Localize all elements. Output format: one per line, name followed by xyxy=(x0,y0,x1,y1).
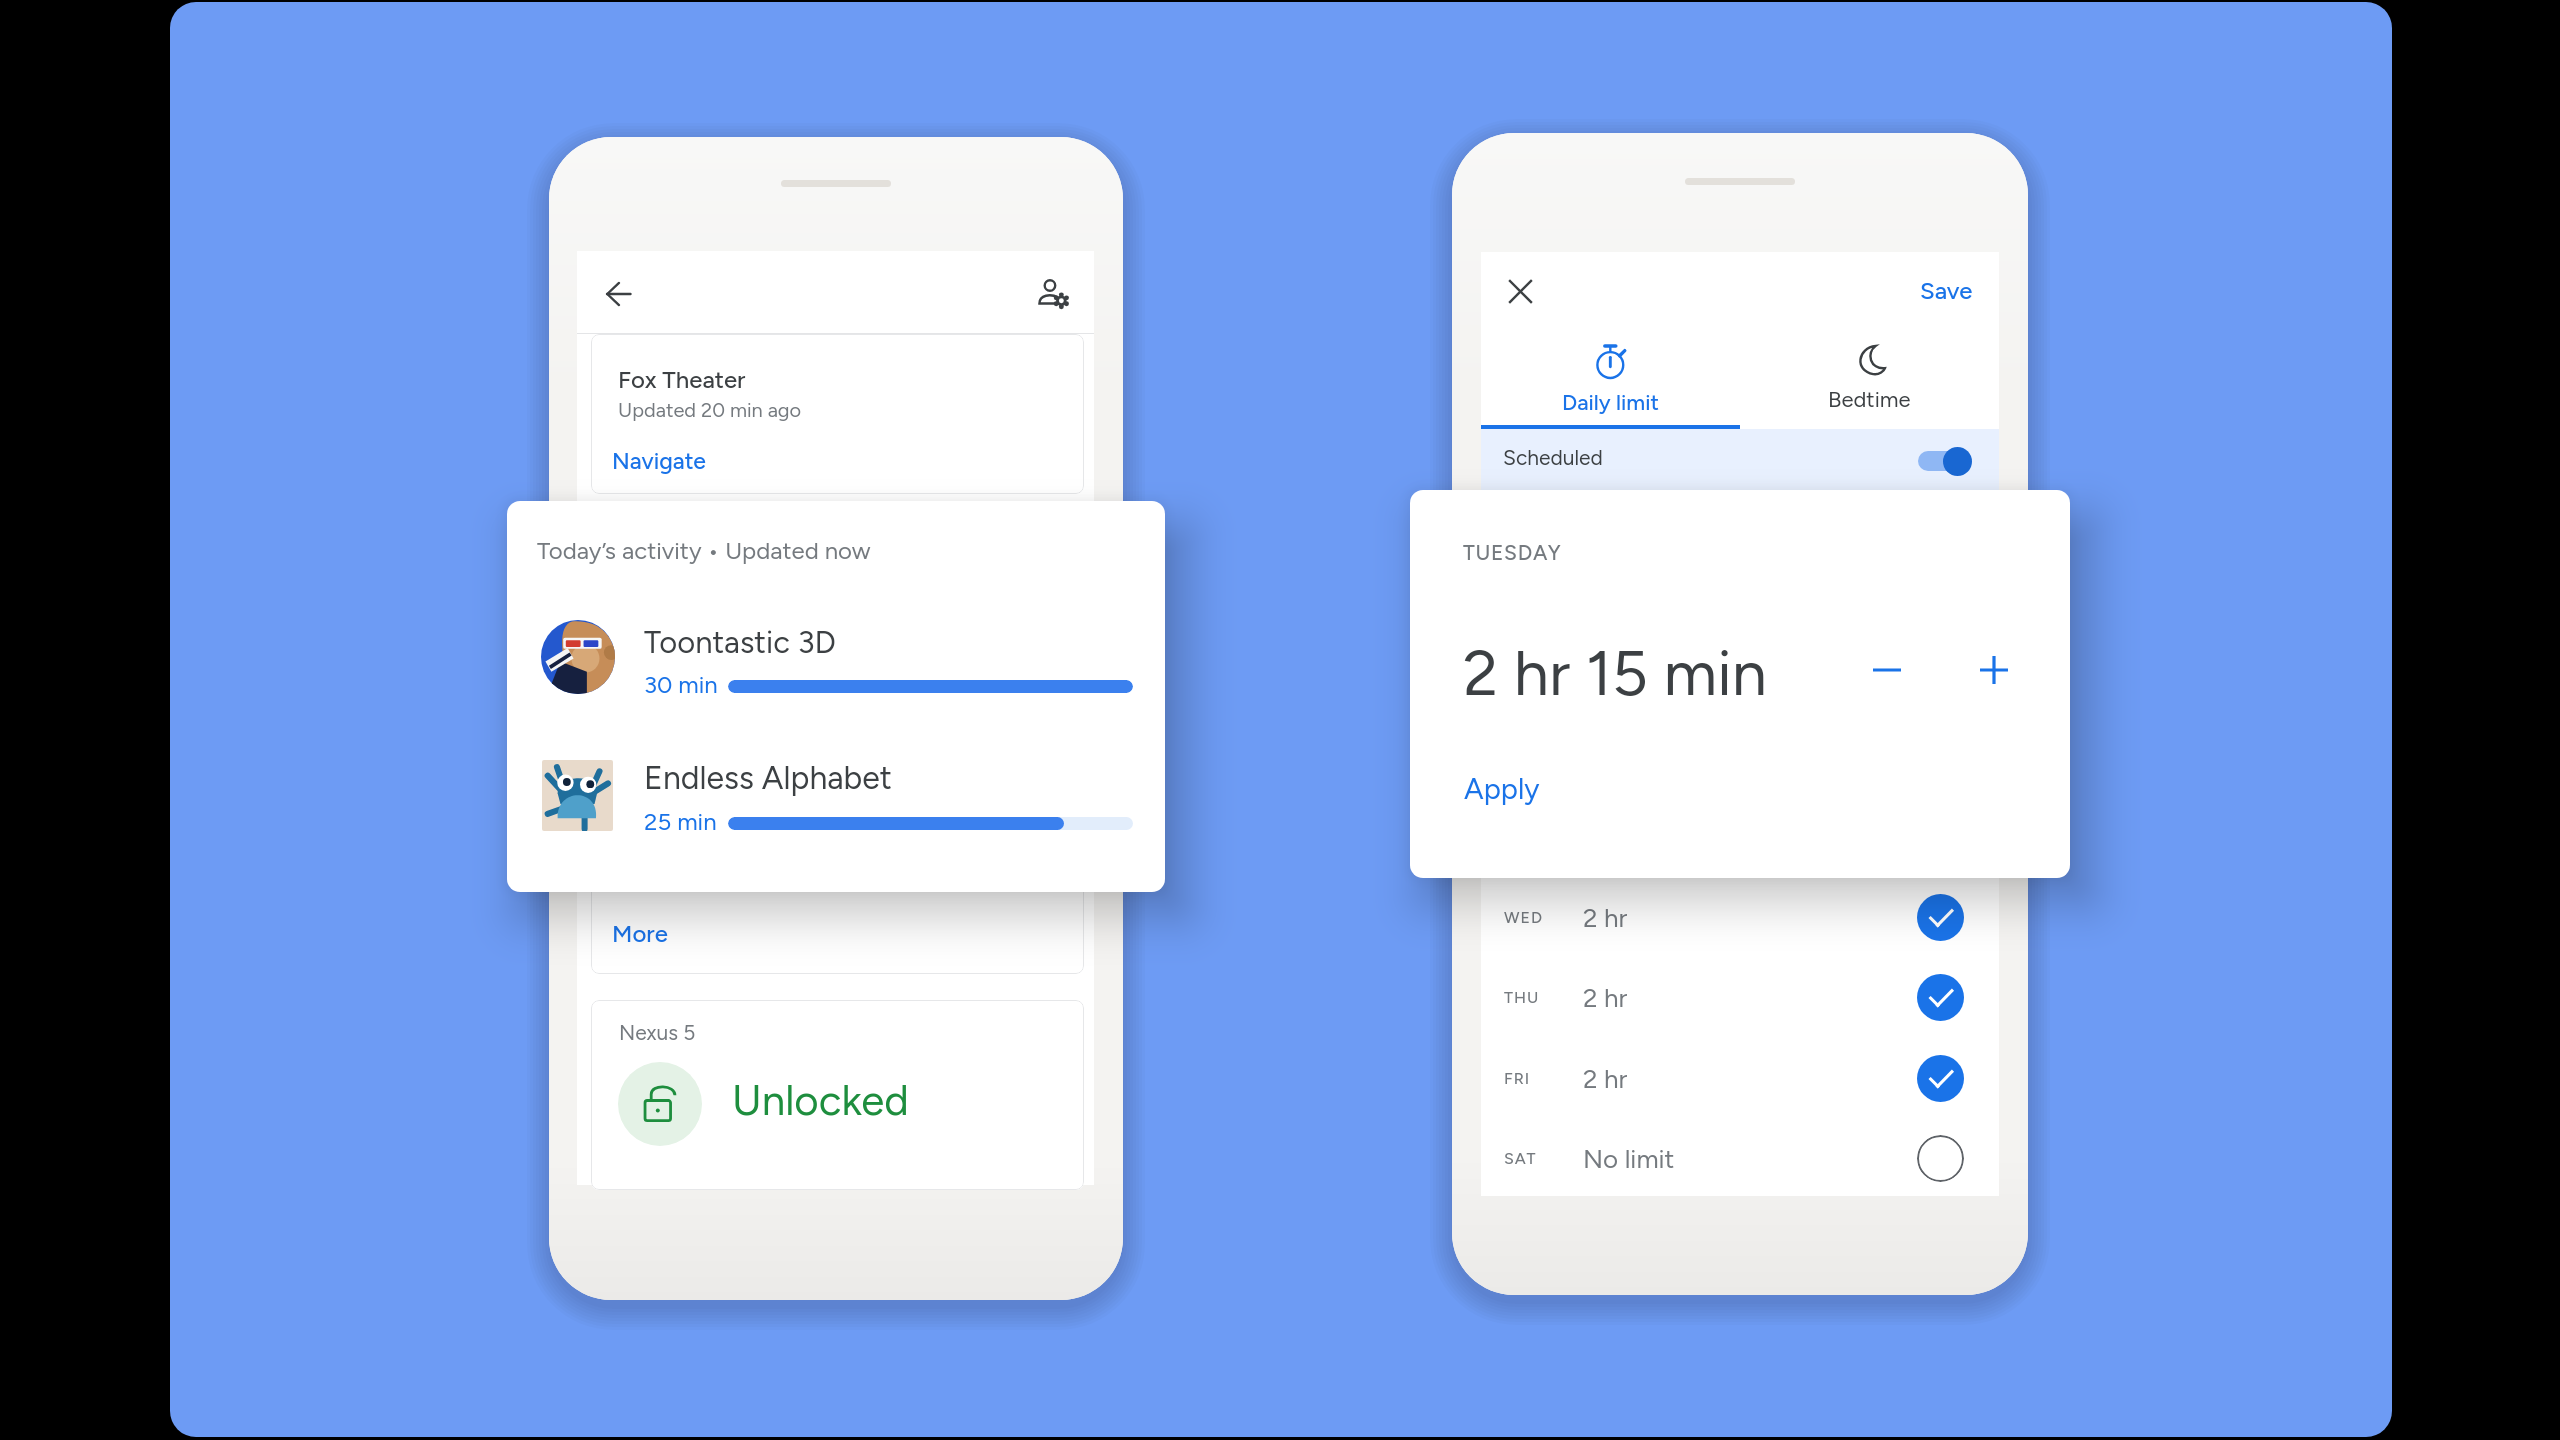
button[interactable]: THU xyxy=(1481,957,1999,1037)
staticText: Updated 20 min ago xyxy=(618,398,802,422)
staticText: Toontastic 3D xyxy=(644,624,836,661)
button[interactable]: WED xyxy=(1481,877,1999,957)
staticText: 2 hr xyxy=(1583,902,1628,933)
staticText: SAT xyxy=(1504,1149,1537,1168)
staticText: 2 hr 15 min xyxy=(1463,635,1767,711)
button[interactable]: Decrease limit xyxy=(1861,644,1913,696)
staticText: FRI xyxy=(1504,1069,1531,1088)
button[interactable]: Increase limit xyxy=(1968,644,2020,696)
staticText: No limit xyxy=(1583,1143,1675,1174)
button[interactable]: Nexus 5 xyxy=(591,1000,1084,1190)
staticText: Scheduled xyxy=(1503,445,1603,470)
button[interactable]: Close xyxy=(1499,270,1541,312)
button[interactable]: Manage account settings xyxy=(1031,273,1073,315)
button[interactable]: Bedtime xyxy=(1740,334,1999,430)
staticText: Unlocked xyxy=(732,1075,909,1125)
staticText: 2 hr xyxy=(1583,982,1628,1013)
button[interactable]: SAT xyxy=(1481,1118,1999,1198)
staticText: Fox Theater xyxy=(618,365,746,394)
button[interactable]: FRI xyxy=(1481,1038,1999,1118)
button[interactable]: Apply xyxy=(1464,771,1540,806)
staticText: Today’s activity • Updated now xyxy=(537,536,871,565)
staticText: Navigate xyxy=(612,447,706,475)
staticText: 30 min xyxy=(644,670,718,699)
button[interactable]: Daily limit xyxy=(1481,334,1740,430)
button[interactable]: Back xyxy=(597,273,639,315)
staticText: Bedtime xyxy=(1828,386,1911,412)
staticText: TUESDAY xyxy=(1463,540,1562,565)
button[interactable]: Scheduled xyxy=(1481,429,1999,493)
staticText: 25 min xyxy=(644,807,717,836)
staticText: THU xyxy=(1504,988,1540,1007)
staticText: Endless Alphabet xyxy=(644,759,892,797)
button[interactable]: Save xyxy=(1914,272,1979,309)
staticText: More xyxy=(612,919,668,948)
staticText: 2 hr xyxy=(1583,1063,1628,1094)
staticText: Daily limit xyxy=(1562,389,1659,415)
staticText: Nexus 5 xyxy=(619,1020,696,1045)
staticText: WED xyxy=(1504,908,1543,927)
button[interactable]: Fox Theater xyxy=(591,334,1084,494)
button[interactable]: More xyxy=(591,849,1084,974)
